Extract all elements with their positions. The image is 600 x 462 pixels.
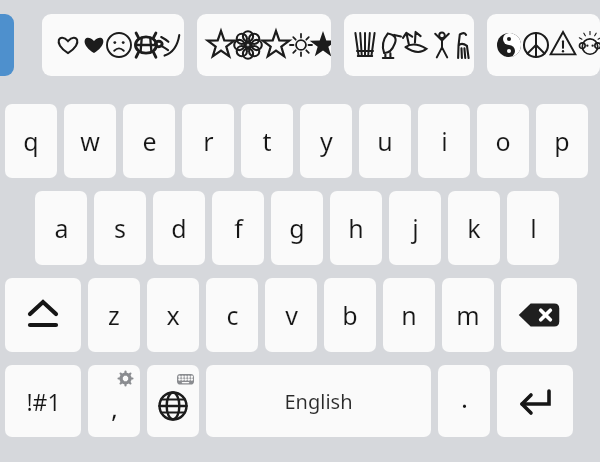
staticText: y	[320, 124, 333, 158]
button[interactable]: d	[153, 191, 205, 265]
staticText: g	[289, 211, 305, 245]
button[interactable]: v	[265, 278, 317, 352]
button[interactable]: f	[212, 191, 264, 265]
button[interactable]: Emoji suggestion	[197, 14, 331, 76]
button[interactable]: z	[88, 278, 140, 352]
button[interactable]: b	[324, 278, 376, 352]
button[interactable]: p	[536, 104, 588, 178]
button[interactable]: c	[206, 278, 258, 352]
button[interactable]: h	[330, 191, 382, 265]
button[interactable]: i	[418, 104, 470, 178]
staticText: x	[166, 298, 180, 332]
button[interactable]: Emoji suggestion	[42, 14, 184, 76]
staticText: j	[412, 211, 419, 245]
button[interactable]: s	[94, 191, 146, 265]
staticText: u	[377, 124, 393, 158]
button[interactable]: Emoji suggestion	[344, 14, 474, 76]
staticText: k	[467, 211, 481, 245]
staticText: m	[456, 298, 480, 332]
button[interactable]: k	[448, 191, 500, 265]
staticText: o	[495, 124, 511, 158]
staticText: w	[80, 124, 100, 158]
button[interactable]: Comma, settings	[88, 365, 140, 437]
button[interactable]: j	[389, 191, 441, 265]
button[interactable]: .	[438, 365, 490, 437]
button[interactable]: n	[383, 278, 435, 352]
button[interactable]: Backspace	[501, 278, 577, 352]
button[interactable]: Emoji suggestion	[487, 14, 600, 76]
staticText: !#1	[26, 386, 61, 417]
staticText: z	[108, 298, 120, 332]
staticText: n	[401, 298, 417, 332]
staticText: .	[461, 380, 468, 415]
staticText: q	[23, 124, 39, 158]
button[interactable]: m	[442, 278, 494, 352]
button[interactable]: !#1	[5, 365, 81, 437]
staticText: English	[284, 388, 353, 415]
staticText: i	[441, 124, 448, 158]
button[interactable]: x	[147, 278, 199, 352]
staticText: v	[285, 298, 298, 332]
button[interactable]: a	[35, 191, 87, 265]
button[interactable]: u	[359, 104, 411, 178]
staticText: f	[234, 211, 243, 245]
button[interactable]: Shift	[5, 278, 81, 352]
button[interactable]: e	[123, 104, 175, 178]
button[interactable]: English	[206, 365, 431, 437]
button[interactable]: o	[477, 104, 529, 178]
button[interactable]: Change language	[147, 365, 199, 437]
button[interactable]: g	[271, 191, 323, 265]
staticText: r	[203, 124, 214, 158]
staticText: s	[114, 211, 126, 245]
button[interactable]: y	[300, 104, 352, 178]
button[interactable]: q	[5, 104, 57, 178]
button[interactable]: Enter	[497, 365, 573, 437]
button[interactable]: r	[182, 104, 234, 178]
staticText: a	[54, 211, 69, 245]
button[interactable]: t	[241, 104, 293, 178]
staticText: d	[171, 211, 187, 245]
staticText: t	[262, 124, 272, 158]
button[interactable]: l	[507, 191, 559, 265]
staticText: p	[554, 124, 570, 158]
staticText: h	[348, 211, 364, 245]
staticText: b	[342, 298, 358, 332]
button[interactable]: w	[64, 104, 116, 178]
staticText: ,	[111, 390, 118, 425]
staticText: l	[530, 211, 537, 245]
button[interactable]: Previous suggestions	[0, 14, 14, 76]
staticText: e	[142, 124, 157, 158]
staticText: c	[226, 298, 239, 332]
